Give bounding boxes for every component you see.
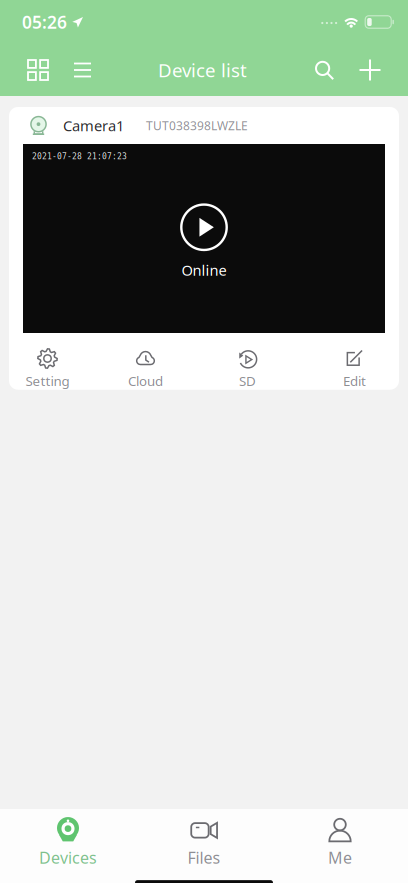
staticText: Me [328,847,352,868]
button[interactable]: Files [136,799,272,872]
button[interactable]: Devices [0,799,136,872]
staticText: 2021-07-28 21:07:23 [32,152,127,161]
button[interactable]: Me [272,799,408,872]
staticText: Device list [158,58,247,82]
staticText: Camera1 [63,116,124,135]
button[interactable]: SD [205,333,290,390]
staticText: 05:26 [22,10,67,33]
button[interactable]: Camera1 [9,107,399,144]
button[interactable]: Grid layout [14,44,62,96]
button[interactable]: Menu [62,44,103,96]
staticText: Edit [343,372,366,390]
staticText: Cloud [128,372,163,390]
button[interactable]: Search [302,44,346,96]
button[interactable]: Add device [346,44,394,96]
staticText: Devices [39,847,97,868]
staticText: TUT038398LWZLE [146,117,248,133]
button[interactable]: Setting [9,333,86,390]
staticText: Setting [25,372,69,390]
button[interactable]: Cloud [86,333,205,390]
button[interactable]: Edit [290,333,399,390]
staticText: Online [181,260,226,280]
staticText: SD [239,372,256,390]
staticText: Files [187,847,220,868]
